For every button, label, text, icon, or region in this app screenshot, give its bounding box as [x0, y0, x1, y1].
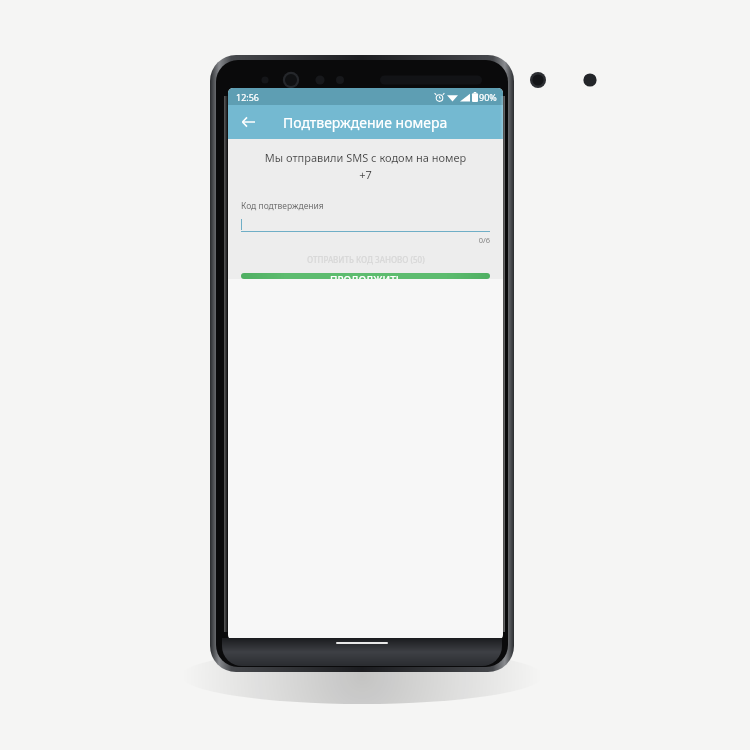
- staticText: +7: [228, 167, 503, 182]
- staticText: Мы отправили SMS с кодом на номер: [228, 150, 503, 165]
- staticText: ОТПРАВИТЬ КОД ЗАНОВО (50): [307, 254, 425, 265]
- staticText: 0/6: [241, 235, 490, 245]
- staticText: 90%: [479, 91, 497, 103]
- staticText: Код подтверждения: [241, 200, 324, 212]
- staticText: 12:56: [236, 91, 260, 103]
- button[interactable]: ОТПРАВИТЬ КОД ЗАНОВО (50): [228, 251, 503, 267]
- button[interactable]: ПРОДОЛЖИТЬ: [241, 273, 490, 279]
- staticText: Подтверждение номера: [283, 113, 448, 132]
- button[interactable]: Код подтверждения: [241, 200, 490, 245]
- staticText: ПРОДОЛЖИТЬ: [330, 273, 402, 279]
- button[interactable]: Back: [236, 110, 260, 134]
